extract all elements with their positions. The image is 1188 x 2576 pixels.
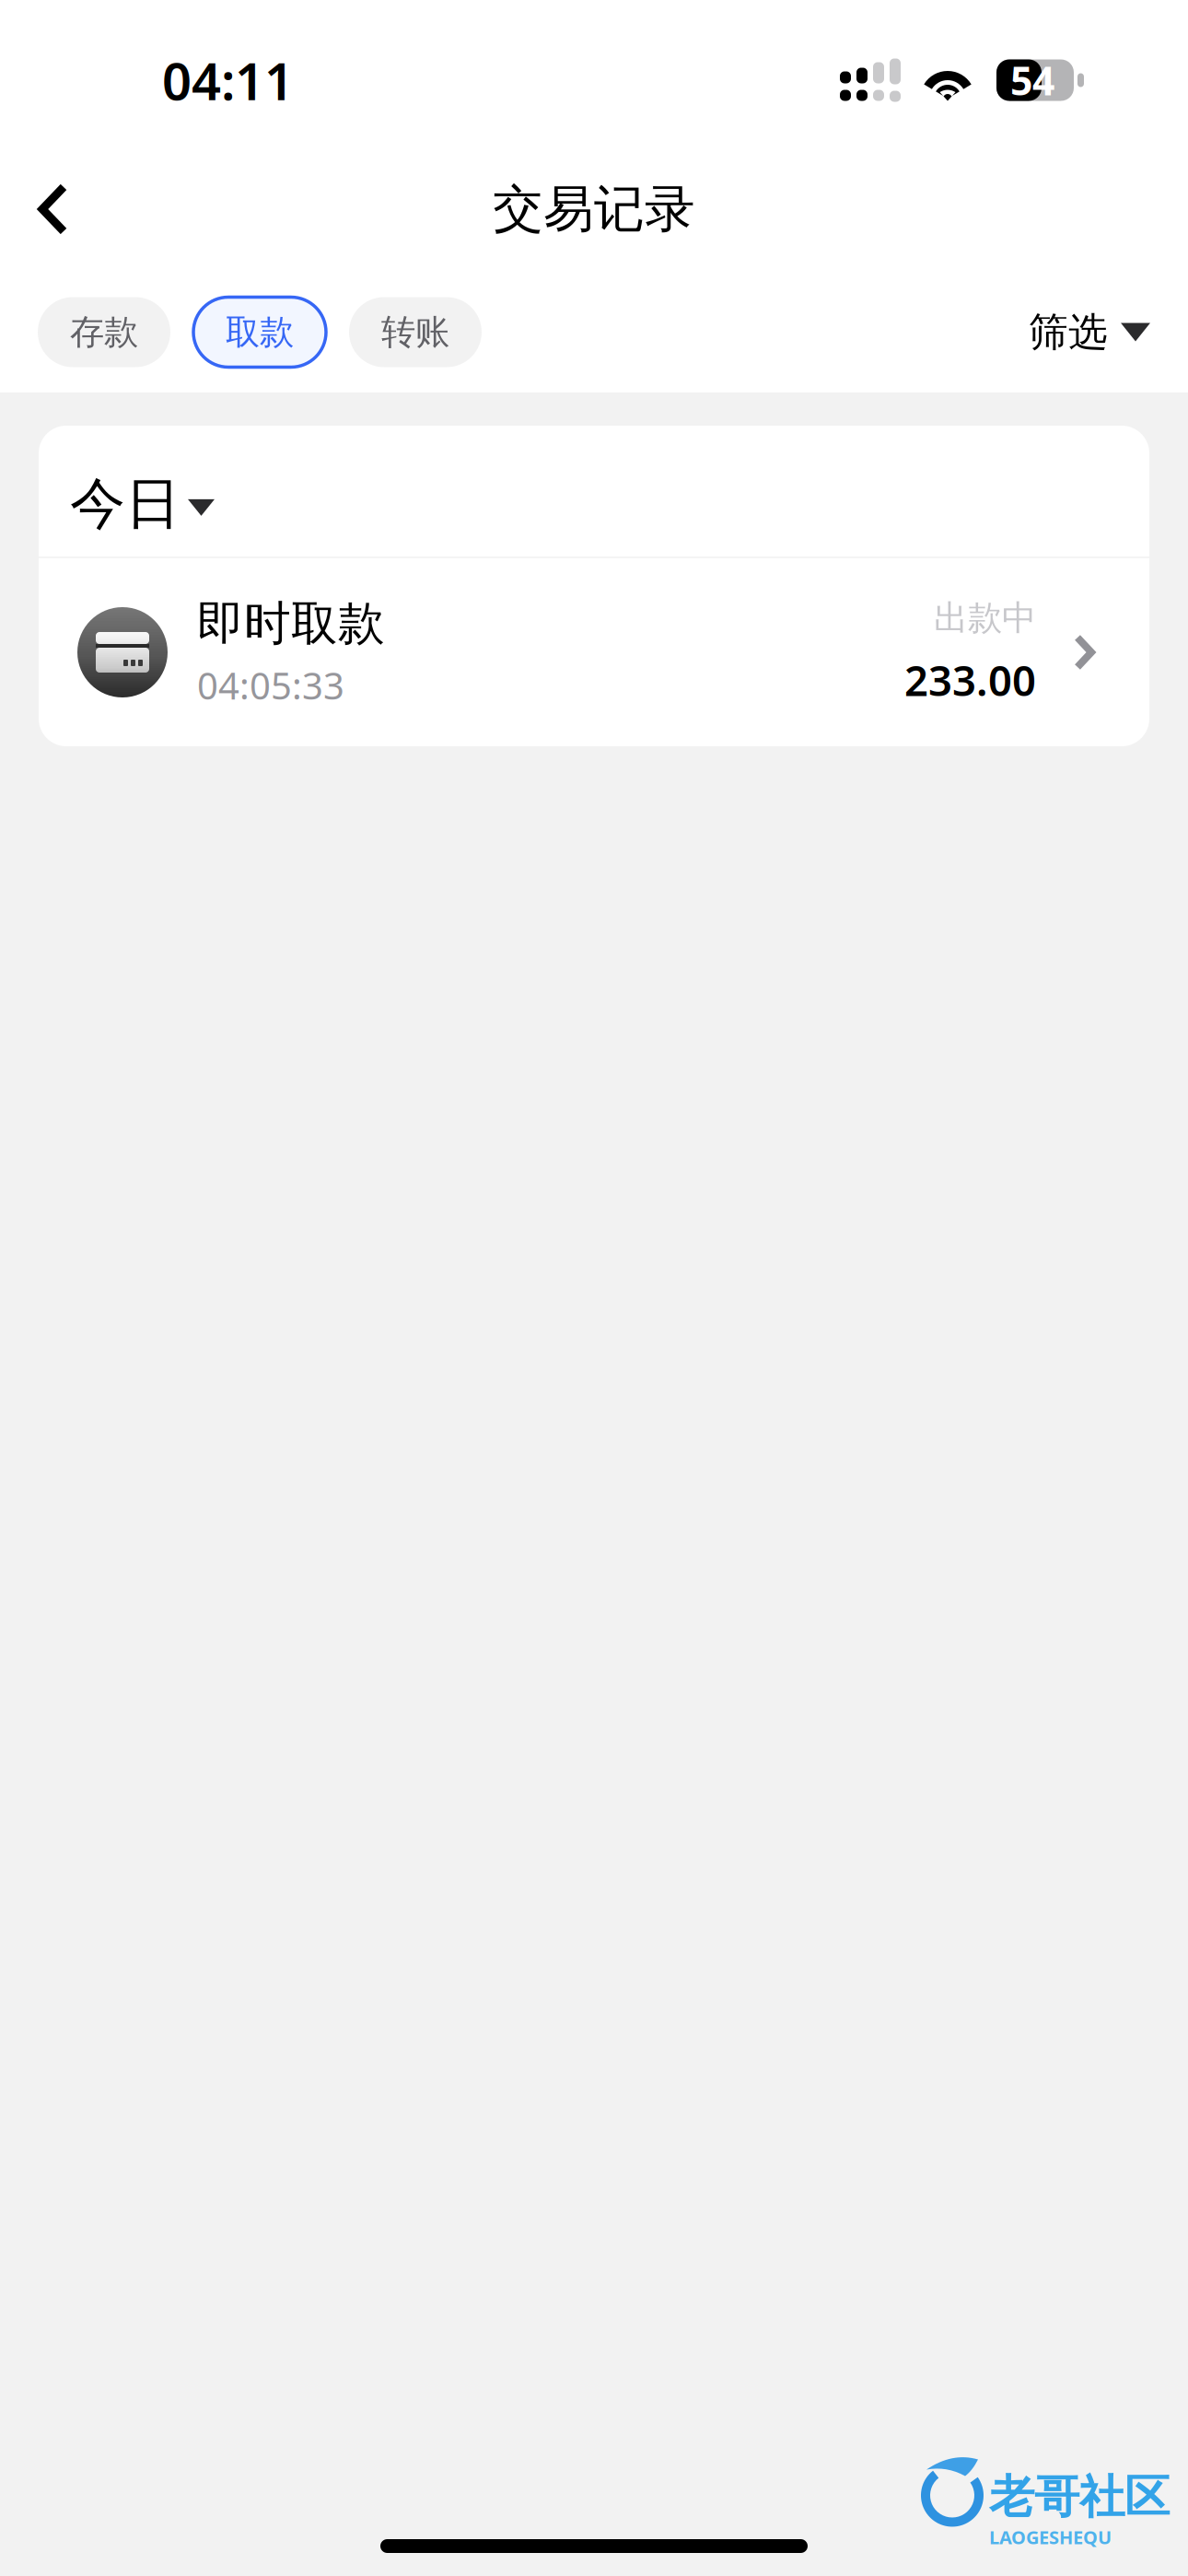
staticText: 04:11: [162, 46, 294, 114]
staticText: 出款中: [934, 597, 1036, 639]
button[interactable]: 存款: [38, 297, 170, 367]
staticText: LAOGESHEQU: [989, 2525, 1112, 2549]
staticText: 54: [1010, 54, 1054, 106]
button[interactable]: 取款: [193, 297, 326, 367]
staticText: 即时取款: [197, 595, 385, 652]
staticText: 233.00: [904, 652, 1036, 708]
button[interactable]: 即时取款: [39, 558, 1149, 746]
button[interactable]: 筛选: [1029, 308, 1150, 356]
button[interactable]: 今日: [39, 426, 1149, 556]
staticText: 取款: [226, 311, 294, 353]
staticText: 今日: [70, 470, 181, 538]
button[interactable]: 转账: [349, 297, 482, 367]
button[interactable]: 返回: [4, 161, 103, 257]
staticText: 转账: [381, 311, 449, 353]
staticText: 交易记录: [493, 178, 695, 240]
staticText: 老哥社区: [989, 2469, 1170, 2525]
staticText: 存款: [70, 311, 138, 353]
staticText: 04:05:33: [197, 661, 344, 710]
staticText: 筛选: [1029, 308, 1108, 356]
